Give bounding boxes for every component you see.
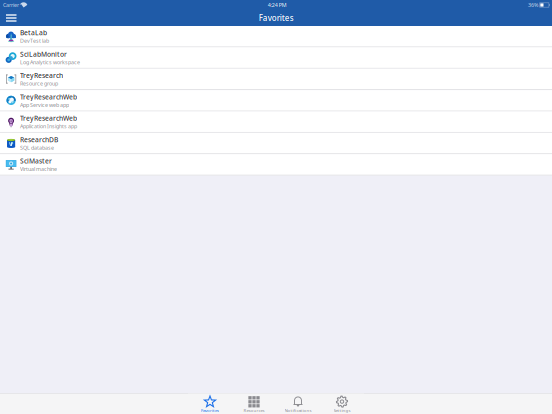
- staticText: TreyResearch: [20, 71, 63, 80]
- staticText: Application Insights app: [20, 123, 77, 130]
- button[interactable]: Favorites: [188, 394, 232, 414]
- staticText: BetaLab: [20, 28, 47, 37]
- button[interactable]: TreyResearchWeb: [0, 111, 552, 133]
- staticText: Log Analytics workspace: [20, 58, 80, 66]
- staticText: Notifications: [284, 407, 311, 413]
- staticText: SQL database: [20, 144, 54, 151]
- button[interactable]: TreyResearch: [0, 69, 552, 90]
- button[interactable]: ResearchDB: [0, 133, 552, 154]
- button[interactable]: BetaLab: [0, 26, 552, 47]
- button[interactable]: SciLabMonitor: [0, 47, 552, 69]
- button[interactable]: Menu: [0, 10, 22, 26]
- staticText: Carrier: [3, 1, 19, 9]
- button[interactable]: SciMaster: [0, 154, 552, 176]
- staticText: App Service web app: [20, 101, 69, 108]
- staticText: SciLabMonitor: [20, 50, 67, 59]
- button[interactable]: Resources: [232, 394, 276, 414]
- staticText: Resource group: [20, 80, 58, 87]
- staticText: Resources: [243, 407, 264, 413]
- staticText: ResearchDB: [20, 135, 58, 144]
- staticText: TreyResearchWeb: [20, 114, 77, 123]
- staticText: Virtual machine: [20, 165, 57, 172]
- staticText: 36%: [528, 1, 538, 9]
- button[interactable]: Settings: [320, 394, 364, 414]
- staticText: 4:24 PM: [268, 1, 287, 9]
- staticText: Favorites: [259, 13, 294, 23]
- button[interactable]: TreyResearchWeb: [0, 90, 552, 111]
- staticText: Settings: [333, 407, 350, 413]
- staticText: DevTest lab: [20, 37, 49, 44]
- staticText: Favorites: [201, 407, 219, 413]
- staticText: SciMaster: [20, 156, 52, 165]
- button[interactable]: Notifications: [276, 394, 320, 414]
- staticText: TreyResearchWeb: [20, 92, 77, 101]
